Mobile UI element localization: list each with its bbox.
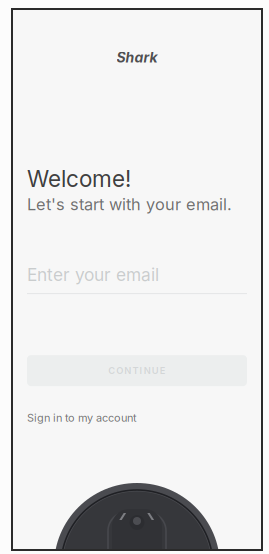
staticText: Shark	[116, 49, 157, 66]
staticText: CONTINUE	[108, 365, 166, 376]
staticText: Welcome!	[27, 165, 131, 192]
staticText: Enter your email	[27, 264, 159, 285]
staticText: Sign in to my account	[27, 411, 137, 424]
button[interactable]: Sign in to my account	[27, 411, 247, 424]
staticText: Let's start with your email.	[27, 194, 232, 214]
button[interactable]: CONTINUE	[27, 355, 247, 386]
